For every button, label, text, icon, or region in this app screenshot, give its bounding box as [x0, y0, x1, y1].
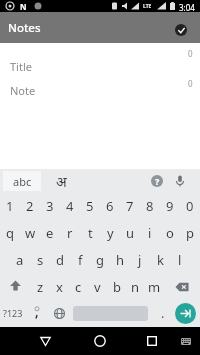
staticText: Title: [10, 59, 32, 74]
button[interactable]: i: [140, 219, 160, 246]
button[interactable]: o: [160, 219, 180, 246]
button[interactable]: Note: [0, 81, 200, 99]
staticText: l: [178, 251, 182, 269]
button[interactable]: [139, 328, 165, 354]
button[interactable]: [175, 24, 187, 36]
staticText: u: [126, 224, 135, 242]
button[interactable]: x: [50, 273, 69, 300]
button[interactable]: t: [80, 219, 100, 246]
staticText: p: [186, 224, 194, 242]
button[interactable]: b: [107, 273, 126, 300]
button[interactable]: m: [145, 273, 164, 300]
button[interactable]: [164, 273, 200, 300]
staticText: LTE: [143, 3, 152, 10]
staticText: h: [116, 251, 125, 269]
staticText: 2: [26, 197, 34, 215]
staticText: w: [25, 224, 36, 242]
button[interactable]: [26, 300, 48, 326]
button[interactable]: f: [70, 246, 90, 273]
button[interactable]: 3: [40, 193, 60, 219]
staticText: m: [148, 278, 161, 296]
button[interactable]: r: [60, 219, 80, 246]
staticText: 1: [6, 197, 14, 215]
staticText: r: [67, 224, 73, 242]
button[interactable]: 7: [120, 193, 140, 219]
staticText: 0: [186, 197, 194, 215]
staticText: a: [16, 251, 24, 269]
staticText: v: [94, 278, 101, 296]
button[interactable]: [32, 328, 58, 354]
staticText: 9: [166, 197, 174, 215]
staticText: j: [138, 251, 142, 269]
button[interactable]: 6: [100, 193, 120, 219]
button[interactable]: ?: [146, 170, 168, 192]
button[interactable]: k: [150, 246, 170, 273]
button[interactable]: p: [180, 219, 200, 246]
staticText: Notes: [8, 20, 41, 36]
button[interactable]: 0: [180, 193, 200, 219]
staticText: d: [56, 251, 64, 269]
staticText: 8: [146, 197, 154, 215]
staticText: .: [161, 304, 165, 322]
staticText: Note: [10, 83, 36, 98]
button[interactable]: 1: [0, 193, 20, 219]
button[interactable]: l: [170, 246, 190, 273]
staticText: 3:04: [179, 2, 195, 13]
button[interactable]: [168, 169, 192, 193]
staticText: 7: [126, 197, 134, 215]
button[interactable]: 9: [160, 193, 180, 219]
staticText: abc: [13, 174, 32, 189]
staticText: 4: [66, 197, 74, 215]
button[interactable]: e: [40, 219, 60, 246]
button[interactable]: ?123: [0, 300, 26, 326]
button[interactable]: z: [30, 273, 50, 300]
button[interactable]: 4: [60, 193, 80, 219]
button[interactable]: j: [130, 246, 150, 273]
button[interactable]: [175, 330, 197, 352]
button[interactable]: w: [20, 219, 40, 246]
staticText: i: [148, 224, 152, 242]
button[interactable]: 5: [80, 193, 100, 219]
staticText: y: [107, 224, 114, 242]
staticText: 5: [86, 197, 94, 215]
button[interactable]: [175, 303, 196, 324]
button[interactable]: g: [90, 246, 110, 273]
button[interactable]: .: [151, 300, 175, 326]
staticText: 3: [46, 197, 54, 215]
button[interactable]: y: [100, 219, 120, 246]
staticText: ?: [155, 175, 160, 187]
button[interactable]: [87, 328, 113, 354]
button[interactable]: अ: [41, 169, 81, 193]
staticText: c: [75, 278, 82, 296]
button[interactable]: [48, 300, 70, 326]
staticText: x: [56, 278, 63, 296]
button[interactable]: h: [110, 246, 130, 273]
staticText: 6: [106, 197, 114, 215]
staticText: e: [46, 224, 54, 242]
staticText: k: [157, 251, 164, 269]
staticText: o: [166, 224, 174, 242]
staticText: q: [6, 224, 14, 242]
button[interactable]: [0, 273, 30, 300]
button[interactable]: v: [88, 273, 107, 300]
button[interactable]: abc: [3, 171, 41, 191]
staticText: N: [20, 1, 27, 12]
button[interactable]: d: [50, 246, 70, 273]
button[interactable]: u: [120, 219, 140, 246]
staticText: b: [113, 278, 121, 296]
staticText: 0: [188, 48, 193, 59]
button[interactable]: Title: [0, 57, 200, 75]
staticText: ?123: [3, 307, 23, 319]
button[interactable]: n: [126, 273, 145, 300]
button[interactable]: q: [0, 219, 20, 246]
button[interactable]: 2: [20, 193, 40, 219]
button[interactable]: 8: [140, 193, 160, 219]
button[interactable]: s: [30, 246, 50, 273]
button[interactable]: c: [69, 273, 88, 300]
staticText: f: [78, 251, 83, 269]
button[interactable]: a: [10, 246, 30, 273]
staticText: 0: [188, 78, 193, 89]
staticText: s: [37, 251, 44, 269]
staticText: n: [131, 278, 140, 296]
